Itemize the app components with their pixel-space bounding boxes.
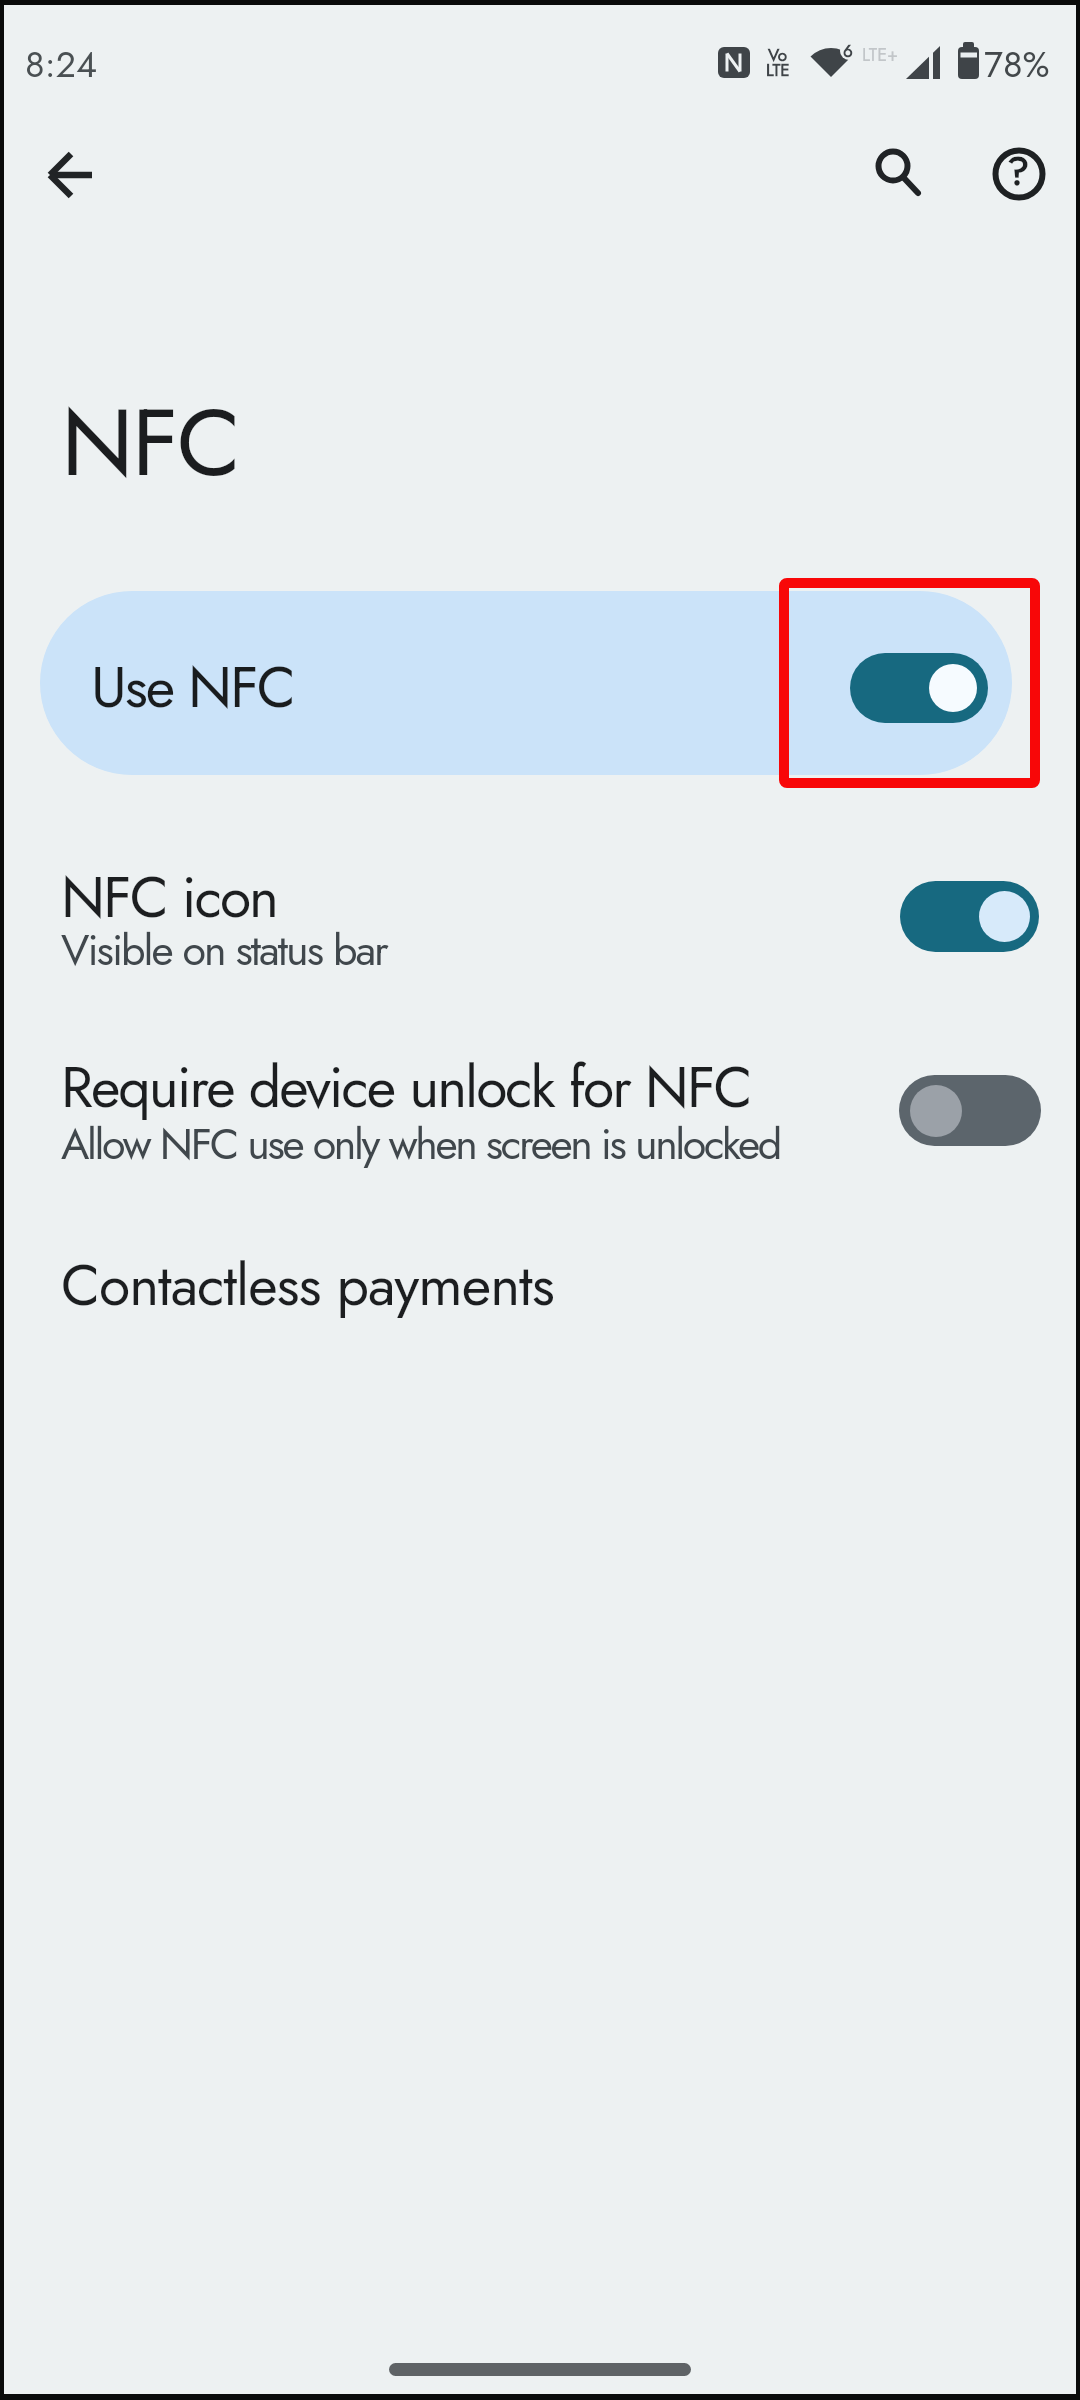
- staticText: Visible on status bar: [61, 919, 387, 981]
- staticText: Allow NFC use only when screen is unlock…: [61, 1113, 780, 1175]
- button[interactable]: Use NFC: [40, 591, 1012, 775]
- staticText: 6: [843, 39, 853, 64]
- button[interactable]: [28, 133, 112, 217]
- staticText: Require device unlock for NFC: [61, 1046, 751, 1128]
- staticText: 78%: [984, 38, 1050, 90]
- staticText: LTE: [766, 58, 790, 83]
- button[interactable]: Require device unlock for NFC: [0, 1040, 1080, 1215]
- staticText: 8:24: [25, 38, 97, 90]
- staticText: NFC icon: [61, 856, 277, 938]
- staticText: ?: [1007, 142, 1030, 200]
- staticText: Vo: [768, 43, 788, 68]
- staticText: Use NFC: [91, 646, 294, 728]
- staticText: NFC: [61, 374, 240, 510]
- button[interactable]: ?: [977, 132, 1061, 216]
- button[interactable]: [855, 133, 939, 217]
- staticText: Contactless payments: [61, 1244, 554, 1326]
- button[interactable]: Contactless payments: [0, 1225, 1080, 1375]
- staticText: LTE+: [862, 42, 899, 68]
- button[interactable]: NFC icon: [0, 845, 1080, 1015]
